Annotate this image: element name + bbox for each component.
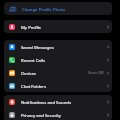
button[interactable]: My Profile: [4, 20, 112, 33]
staticText: Scan QR: [88, 70, 104, 76]
button[interactable]: Chat Folders: [4, 79, 112, 92]
staticText: Devices: [21, 70, 37, 76]
button[interactable]: Change Profile Photo: [4, 2, 112, 15]
button[interactable]: Saved Messages: [4, 40, 112, 53]
button[interactable]: Devices: [4, 66, 112, 79]
staticText: Recent Calls: [21, 57, 46, 63]
staticText: Saved Messages: [21, 44, 54, 50]
button[interactable]: Privacy and Security: [4, 108, 112, 120]
staticText: Change Profile Photo: [22, 6, 65, 12]
staticText: Privacy and Security: [21, 112, 61, 118]
button[interactable]: Notifications and Sounds: [4, 95, 112, 108]
staticText: My Profile: [21, 24, 41, 30]
staticText: Chat Folders: [21, 83, 47, 89]
button[interactable]: Recent Calls: [4, 53, 112, 66]
staticText: Notifications and Sounds: [21, 99, 71, 105]
